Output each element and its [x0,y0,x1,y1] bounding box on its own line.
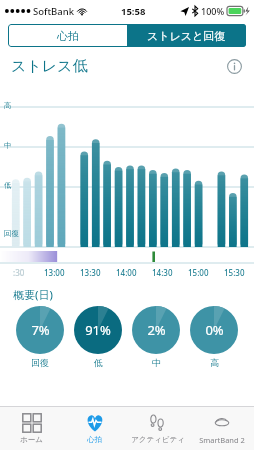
staticText: 0% [205,321,224,339]
staticText: SoftBank [33,5,74,18]
staticText: 低 [94,357,103,368]
staticText: 14:30 [152,267,173,278]
staticText: アクティビティ [131,435,185,444]
staticText: 中 [4,141,12,150]
staticText: 15:00 [188,267,209,278]
staticText: ストレスと回復 [147,29,226,43]
staticText: 高 [4,101,12,110]
staticText: 13:00 [44,267,65,278]
button[interactable]: 心拍 [8,24,127,47]
staticText: 心拍 [87,435,102,444]
staticText: ストレス低 [11,57,88,76]
staticText: ホーム [20,435,43,444]
button[interactable]: 7% [16,306,64,368]
button[interactable]: SmartBand 2 [190,407,254,450]
staticText: 概要(日) [13,287,53,302]
staticText: 15:58 [121,5,146,18]
button[interactable]: 91% [74,306,122,368]
button[interactable]: ホーム [0,407,63,450]
staticText: 回復 [31,357,49,368]
staticText: 高 [210,357,219,368]
staticText: SmartBand 2 [199,435,245,445]
staticText: 2% [147,321,166,339]
staticText: 低 [4,181,12,190]
staticText: 13:30 [80,267,101,278]
staticText: 心拍 [57,29,79,43]
staticText: 15:30 [224,267,245,278]
button[interactable]: 2% [132,306,180,368]
button[interactable]: 0% [190,306,238,368]
staticText: 100% [201,5,225,17]
staticText: 中 [152,357,161,368]
staticText: 91% [85,321,111,339]
button[interactable]: Information [225,57,243,75]
staticText: 14:00 [116,267,137,278]
staticText: 7% [31,321,50,339]
staticText: 回復 [4,229,19,238]
staticText: :30 [13,267,25,278]
button[interactable]: ストレスと回復 [127,24,246,47]
button[interactable]: 心拍 [63,407,126,450]
button[interactable]: アクティビティ [126,407,190,450]
